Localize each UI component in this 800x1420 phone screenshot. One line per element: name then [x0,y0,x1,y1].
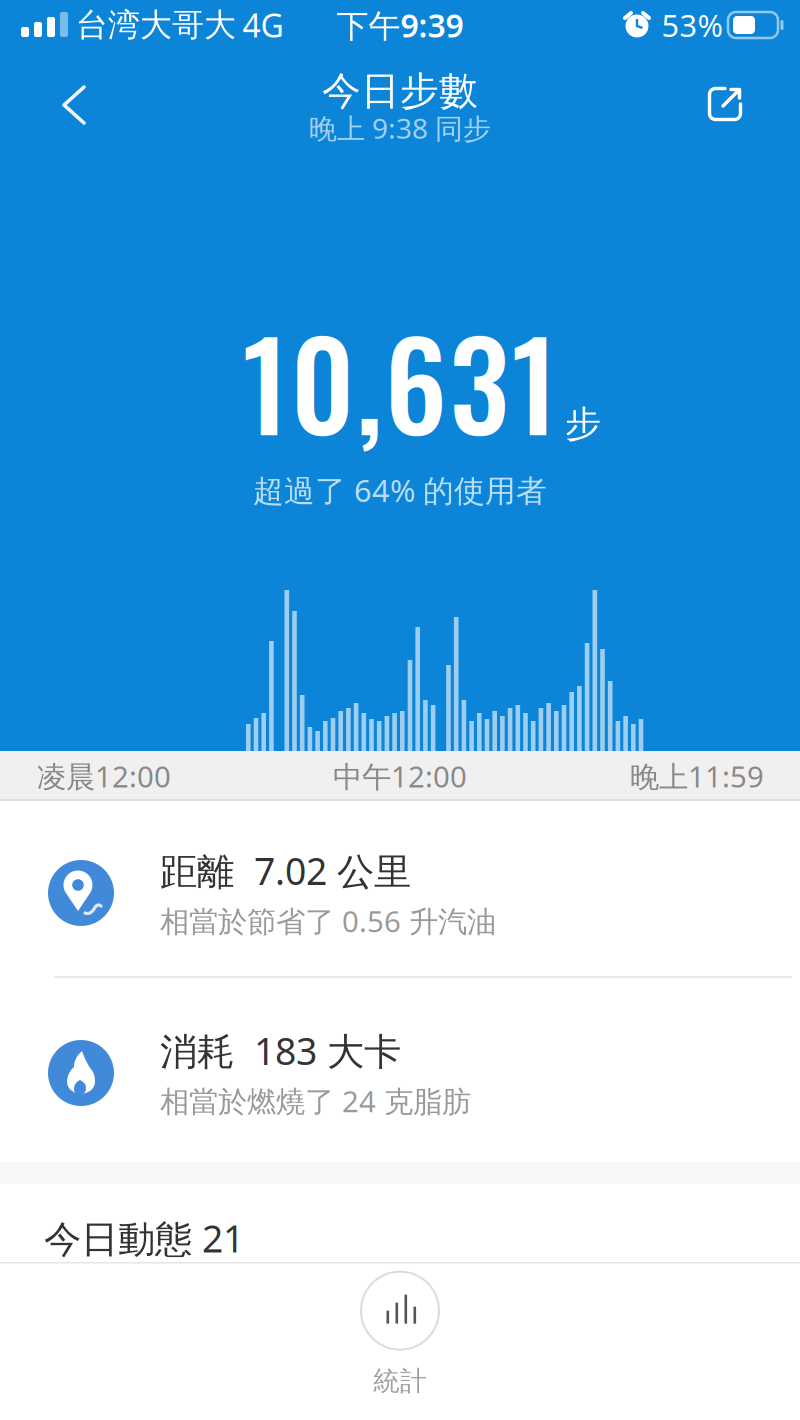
button[interactable]: 統計 [360,1271,440,1397]
staticText: 今日步數 [322,67,478,115]
staticText: 10,631 [242,292,557,470]
staticText: 晚上 9:38 同步 [309,109,491,147]
staticText: 相當於節省了 0.56 升汽油 [160,901,496,940]
staticText: 晚上11:59 [630,756,764,795]
staticText: 統計 [373,1365,427,1397]
staticText: 步 [565,402,601,446]
staticText: 超過了 64% 的使用者 [253,470,547,510]
staticText: 今日動態 21 [44,1213,244,1263]
staticText: 消耗 183 大卡 [160,1026,401,1075]
button[interactable]: 消耗 183 大卡 [0,988,800,1158]
button[interactable] [695,74,755,134]
button[interactable] [54,79,114,131]
staticText: 下午9:39 [336,4,463,46]
staticText: 台湾大哥大 [76,5,236,45]
staticText: 中午12:00 [333,756,467,795]
staticText: 相當於燃燒了 24 克脂肪 [160,1081,471,1120]
staticText: 距離 7.02 公里 [160,846,411,895]
staticText: 凌晨12:00 [37,756,171,795]
staticText: 53% [661,5,722,45]
staticText: 4G [242,4,283,46]
button[interactable]: 距離 7.02 公里 [0,808,800,978]
